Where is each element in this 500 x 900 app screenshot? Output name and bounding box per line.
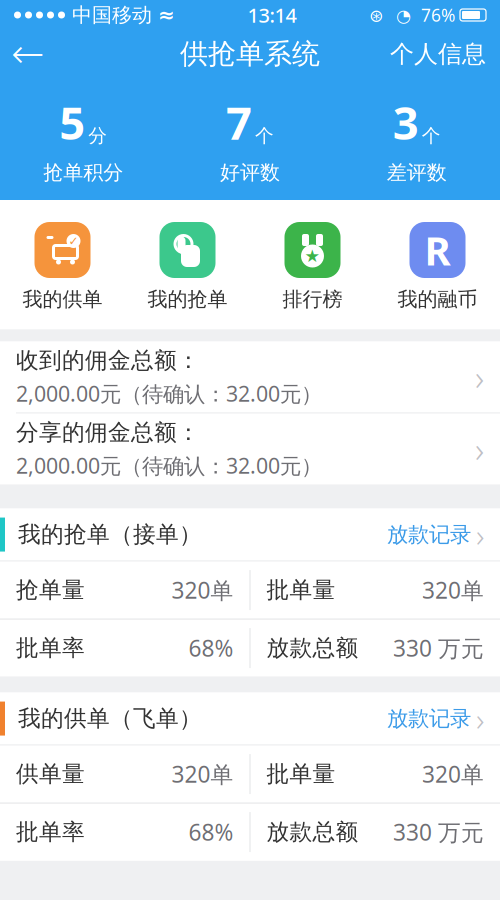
staticText: 个	[255, 124, 274, 147]
staticText: ›	[475, 354, 484, 400]
staticText: R	[424, 223, 450, 276]
staticText: 2,000.00元（待确认：32.00元）	[16, 451, 322, 480]
button[interactable]: 个人信息	[376, 32, 500, 76]
staticText: 320单	[171, 759, 233, 789]
staticText: 差评数	[387, 160, 447, 185]
staticText: 68%	[188, 633, 233, 663]
staticText: 好评数	[220, 160, 280, 185]
staticText: 放款记录	[387, 705, 471, 732]
staticText: 320单	[171, 575, 233, 605]
staticText: 330 万元	[393, 817, 484, 847]
staticText: 我的供单	[22, 287, 102, 312]
staticText: 抢单积分	[43, 160, 123, 185]
staticText: 320单	[422, 759, 484, 789]
button[interactable]: ✓	[0, 218, 125, 316]
staticText: 放款总额	[266, 634, 358, 662]
staticText: 中国移动	[72, 3, 152, 27]
staticText: 68%	[188, 817, 233, 847]
staticText: 320单	[422, 575, 484, 605]
staticText: 供抢单系统	[180, 37, 320, 71]
staticText: 个人信息	[390, 39, 486, 69]
staticText: 排行榜	[282, 287, 342, 312]
staticText: 分	[88, 124, 107, 147]
button[interactable]: 返回	[0, 32, 56, 76]
staticText: ›	[476, 513, 484, 556]
staticText: 批单量	[266, 760, 335, 788]
staticText: 我的供单（飞单）	[18, 705, 202, 732]
staticText: 3	[393, 92, 419, 152]
staticText: 分享的佣金总额：	[16, 418, 200, 446]
staticText: 13:14	[247, 2, 296, 28]
staticText: ✓	[68, 234, 78, 248]
staticText: ›	[476, 697, 484, 740]
staticText: 抢单量	[16, 576, 85, 604]
staticText: 批单量	[266, 576, 335, 604]
button[interactable]: 放款记录	[387, 509, 500, 561]
staticText: 批单率	[16, 818, 85, 846]
button[interactable]: 放款记录	[387, 693, 500, 745]
staticText: ≈	[158, 4, 175, 26]
button[interactable]: 收到的佣金总额：	[0, 342, 500, 413]
button[interactable]: 我的抢单	[125, 218, 250, 316]
staticText: 放款总额	[266, 818, 358, 846]
staticText: 我的抢单	[147, 287, 227, 312]
staticText: 供单量	[16, 760, 85, 788]
staticText: ←	[11, 31, 45, 77]
staticText: ›	[475, 426, 484, 472]
staticText: ⊛ ◔ 76%	[369, 3, 455, 26]
staticText: 放款记录	[387, 521, 471, 548]
button[interactable]: R	[375, 218, 500, 316]
staticText: 批单率	[16, 634, 85, 662]
button[interactable]: ★	[250, 218, 375, 316]
staticText: 5	[59, 92, 85, 152]
staticText: 2,000.00元（待确认：32.00元）	[16, 379, 322, 408]
staticText: 7	[226, 92, 252, 152]
staticText: 我的抢单（接单）	[18, 521, 202, 548]
button[interactable]: 分享的佣金总额：	[0, 414, 500, 485]
staticText: 我的融币	[397, 287, 477, 312]
staticText: 个	[422, 124, 441, 147]
staticText: 330 万元	[393, 633, 484, 663]
staticText: ★	[304, 246, 320, 266]
staticText: 收到的佣金总额：	[16, 346, 200, 374]
